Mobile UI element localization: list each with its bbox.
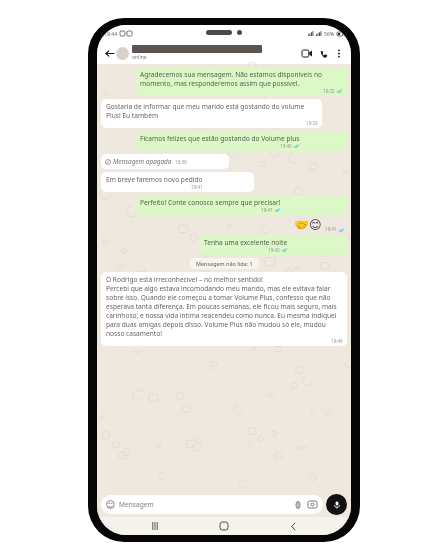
button[interactable]: Gostaria de informar que meu marido está… bbox=[101, 99, 322, 128]
button[interactable]: Camera bbox=[307, 499, 318, 510]
button[interactable]: Recents bbox=[144, 517, 166, 535]
button[interactable]: Mensagem apagada bbox=[101, 154, 229, 169]
button[interactable]: Mensagem bbox=[101, 495, 323, 514]
button[interactable]: Agradecemos sua mensagem. Não estamos di… bbox=[135, 67, 347, 96]
staticText: 19:44 bbox=[104, 30, 118, 37]
button[interactable]: Home bbox=[213, 517, 235, 535]
button[interactable]: Back bbox=[282, 517, 304, 535]
staticText: Tenha uma excelente noite bbox=[204, 238, 288, 247]
button[interactable]: O Rodrigo está irreconhecível – no melho… bbox=[101, 272, 347, 346]
staticText: online bbox=[132, 54, 147, 61]
staticText: 19:32 bbox=[306, 120, 318, 126]
button[interactable]: Perfeito! Conte conosco sempre que preci… bbox=[135, 195, 347, 215]
staticText: Em breve faremos novo pedido bbox=[106, 175, 203, 184]
staticText: Gostaria de informar que meu marido está… bbox=[106, 102, 318, 120]
staticText: Ficamos felizes que estão gostando do Vo… bbox=[140, 134, 300, 143]
button[interactable]: Voice message bbox=[326, 494, 347, 515]
button[interactable]: Tenha uma excelente noite bbox=[199, 235, 347, 255]
staticText: Perfeito! Conte conosco sempre que preci… bbox=[140, 198, 281, 207]
staticText: 19:41 bbox=[191, 184, 203, 190]
staticText: Mensagem bbox=[119, 500, 154, 509]
staticText: 19:39 bbox=[175, 159, 187, 165]
staticText: 🤝😊 bbox=[294, 218, 322, 232]
staticText: 19:42 bbox=[268, 247, 280, 253]
staticText: 56% bbox=[324, 30, 335, 37]
button[interactable]: More options bbox=[332, 47, 345, 60]
button[interactable]: Attach bbox=[292, 499, 303, 510]
staticText: Mensagem apagada bbox=[113, 157, 172, 166]
button[interactable]: Back bbox=[103, 47, 115, 59]
staticText: 19:41 bbox=[261, 207, 273, 213]
staticText: 19:41 bbox=[325, 226, 337, 232]
staticText: O Rodrigo está irreconhecível – no melho… bbox=[106, 275, 343, 338]
button[interactable]: Video call bbox=[299, 46, 314, 61]
staticText: 19:44 bbox=[331, 338, 343, 344]
button[interactable]: Ficamos felizes que estão gostando do Vo… bbox=[135, 131, 347, 151]
staticText: Mensagem não lida: 1 bbox=[196, 260, 253, 267]
button[interactable]: Voice call bbox=[316, 46, 331, 61]
staticText: 19:32 bbox=[323, 88, 335, 94]
staticText: 19:40 bbox=[280, 143, 292, 149]
button[interactable]: Em breve faremos novo pedido bbox=[101, 172, 254, 192]
button[interactable]: online bbox=[132, 45, 299, 61]
staticText: Agradecemos sua mensagem. Não estamos di… bbox=[140, 70, 343, 88]
